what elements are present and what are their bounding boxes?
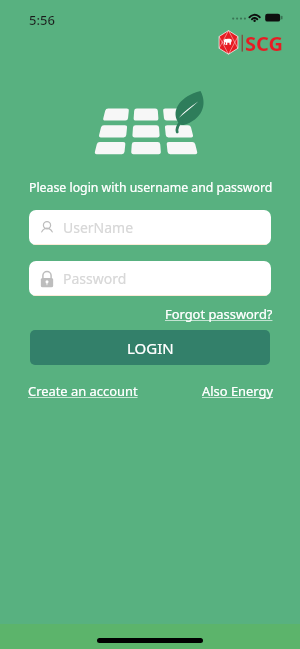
button[interactable]: Forgot password? xyxy=(165,305,273,323)
button[interactable]: Create an account xyxy=(28,382,138,400)
staticText: Please login with username and password xyxy=(29,179,273,196)
button[interactable]: LOGIN xyxy=(30,330,270,365)
button[interactable]: UserName xyxy=(29,210,271,245)
staticText: Password xyxy=(63,269,127,288)
staticText: SCG xyxy=(245,30,283,57)
button[interactable]: Password xyxy=(29,261,271,296)
staticText: UserName xyxy=(63,218,134,237)
staticText: LOGIN xyxy=(127,338,174,358)
button[interactable]: Also Energy xyxy=(202,382,273,400)
staticText: 5:56 xyxy=(29,11,55,29)
